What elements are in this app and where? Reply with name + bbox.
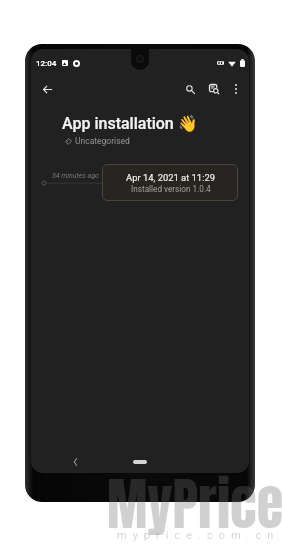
button[interactable]: Apr 14, 2021 at 11:29 (102, 164, 238, 201)
staticText: MyPrice (107, 462, 282, 547)
button[interactable]: Search (180, 79, 200, 99)
button[interactable]: Search in notes (204, 79, 224, 99)
button[interactable]: More options (226, 79, 246, 99)
staticText: myprice.com.cn (117, 529, 280, 542)
staticText: Installed version 1.0.4 (131, 184, 211, 194)
staticText: 12:04 (36, 59, 57, 68)
button[interactable]: Home (133, 460, 147, 464)
button[interactable]: Back (37, 79, 57, 99)
button[interactable]: Back (67, 454, 83, 470)
staticText: Apr 14, 2021 at 11:29 (126, 172, 215, 183)
staticText: 34 minutes ago (52, 172, 99, 180)
staticText: Uncategorised (75, 136, 130, 146)
staticText: App installation 👋 (62, 114, 198, 133)
